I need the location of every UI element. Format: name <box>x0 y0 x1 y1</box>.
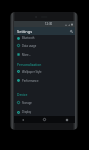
button[interactable]: Bluetooth <box>14 35 75 41</box>
staticText: Settings <box>17 29 33 34</box>
button[interactable]: Storage <box>14 97 75 108</box>
button[interactable]: Back <box>20 117 25 122</box>
button[interactable]: Wallpaper Style <box>14 67 75 76</box>
button[interactable]: Home <box>42 117 47 122</box>
staticText: Display <box>22 110 32 114</box>
button[interactable]: Performance <box>14 76 75 85</box>
staticText: Device <box>17 92 28 96</box>
staticText: Wallpaper Style <box>22 70 42 74</box>
button[interactable]: Recents <box>64 117 69 122</box>
button[interactable]: More... <box>14 50 75 59</box>
button[interactable]: Search <box>68 28 75 35</box>
button[interactable]: Display <box>14 108 75 116</box>
staticText: Performance <box>22 79 39 83</box>
staticText: More... <box>22 53 31 57</box>
staticText: 12:30 <box>45 22 53 26</box>
staticText: Personalization <box>17 62 42 66</box>
staticText: Storage <box>22 101 32 105</box>
staticText: Bluetooth <box>22 36 35 40</box>
staticText: Data usage <box>22 44 37 48</box>
button[interactable]: Data usage <box>14 41 75 50</box>
